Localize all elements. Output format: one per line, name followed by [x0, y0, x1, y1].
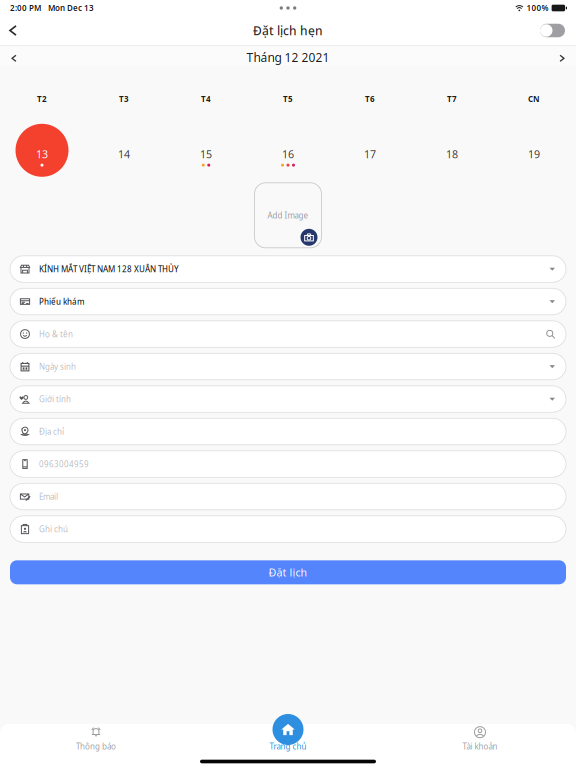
staticText: 17	[364, 147, 376, 161]
staticText: Thông báo	[76, 741, 116, 752]
button[interactable]: KÍNH MẮT VIỆT NAM 128 XUÂN THỦY	[10, 256, 566, 282]
button[interactable]: Địa chỉ	[10, 418, 566, 445]
button[interactable]: Toggle notifications	[532, 16, 576, 45]
staticText: 19	[528, 147, 540, 161]
button[interactable]: Phiếu khám	[10, 288, 566, 315]
staticText: Trang chủ	[269, 741, 306, 752]
staticText: KÍNH MẮT VIỆT NAM 128 XUÂN THỦY	[39, 264, 179, 274]
button[interactable]: Thông báo	[0, 724, 192, 755]
button[interactable]: Trang chủ	[192, 724, 384, 755]
button[interactable]: Ngày sinh	[10, 353, 566, 380]
staticText: Add Image	[267, 210, 308, 221]
staticText: Tháng 12 2021	[246, 49, 329, 65]
staticText: 0963004959	[39, 459, 89, 469]
staticText: Đặt lịch hẹn	[253, 22, 323, 38]
staticText: 100%	[527, 3, 549, 13]
staticText: T2	[37, 93, 47, 104]
staticText: Mon Dec 13	[48, 3, 94, 13]
staticText: Ghi chú	[39, 524, 68, 534]
staticText: 13	[36, 147, 48, 161]
staticText: T5	[283, 93, 293, 104]
staticText: Địa chỉ	[39, 426, 64, 437]
staticText: T7	[447, 93, 457, 104]
staticText: Phiếu khám	[39, 296, 85, 307]
staticText: Ngày sinh	[39, 361, 76, 372]
staticText: Tài khoản	[462, 741, 497, 752]
staticText: 16	[282, 147, 294, 161]
staticText: 15	[200, 147, 212, 161]
button[interactable]: Ghi chú	[10, 516, 566, 542]
staticText: 14	[118, 147, 130, 161]
button[interactable]: Next month	[548, 46, 576, 65]
staticText: Họ & tên	[39, 329, 73, 339]
button[interactable]: Giới tính	[10, 386, 566, 412]
staticText: 2:00 PM	[10, 3, 41, 13]
staticText: T6	[365, 93, 375, 104]
button[interactable]: Đặt lịch	[10, 560, 566, 584]
button[interactable]: Add Image	[254, 183, 321, 248]
button[interactable]: 0963004959	[10, 451, 566, 477]
staticText: T3	[119, 93, 129, 104]
staticText: Giới tính	[39, 394, 71, 404]
staticText: Đặt lịch	[268, 565, 307, 579]
button[interactable]: Email	[10, 483, 566, 510]
button[interactable]: Back	[0, 16, 26, 45]
button[interactable]: Tài khoản	[384, 724, 576, 755]
staticText: CN	[528, 93, 540, 104]
button[interactable]: Họ & tên	[10, 321, 566, 347]
button[interactable]: Previous month	[0, 46, 28, 65]
staticText: 18	[446, 147, 458, 161]
staticText: T4	[201, 93, 211, 104]
staticText: Email	[39, 491, 58, 502]
